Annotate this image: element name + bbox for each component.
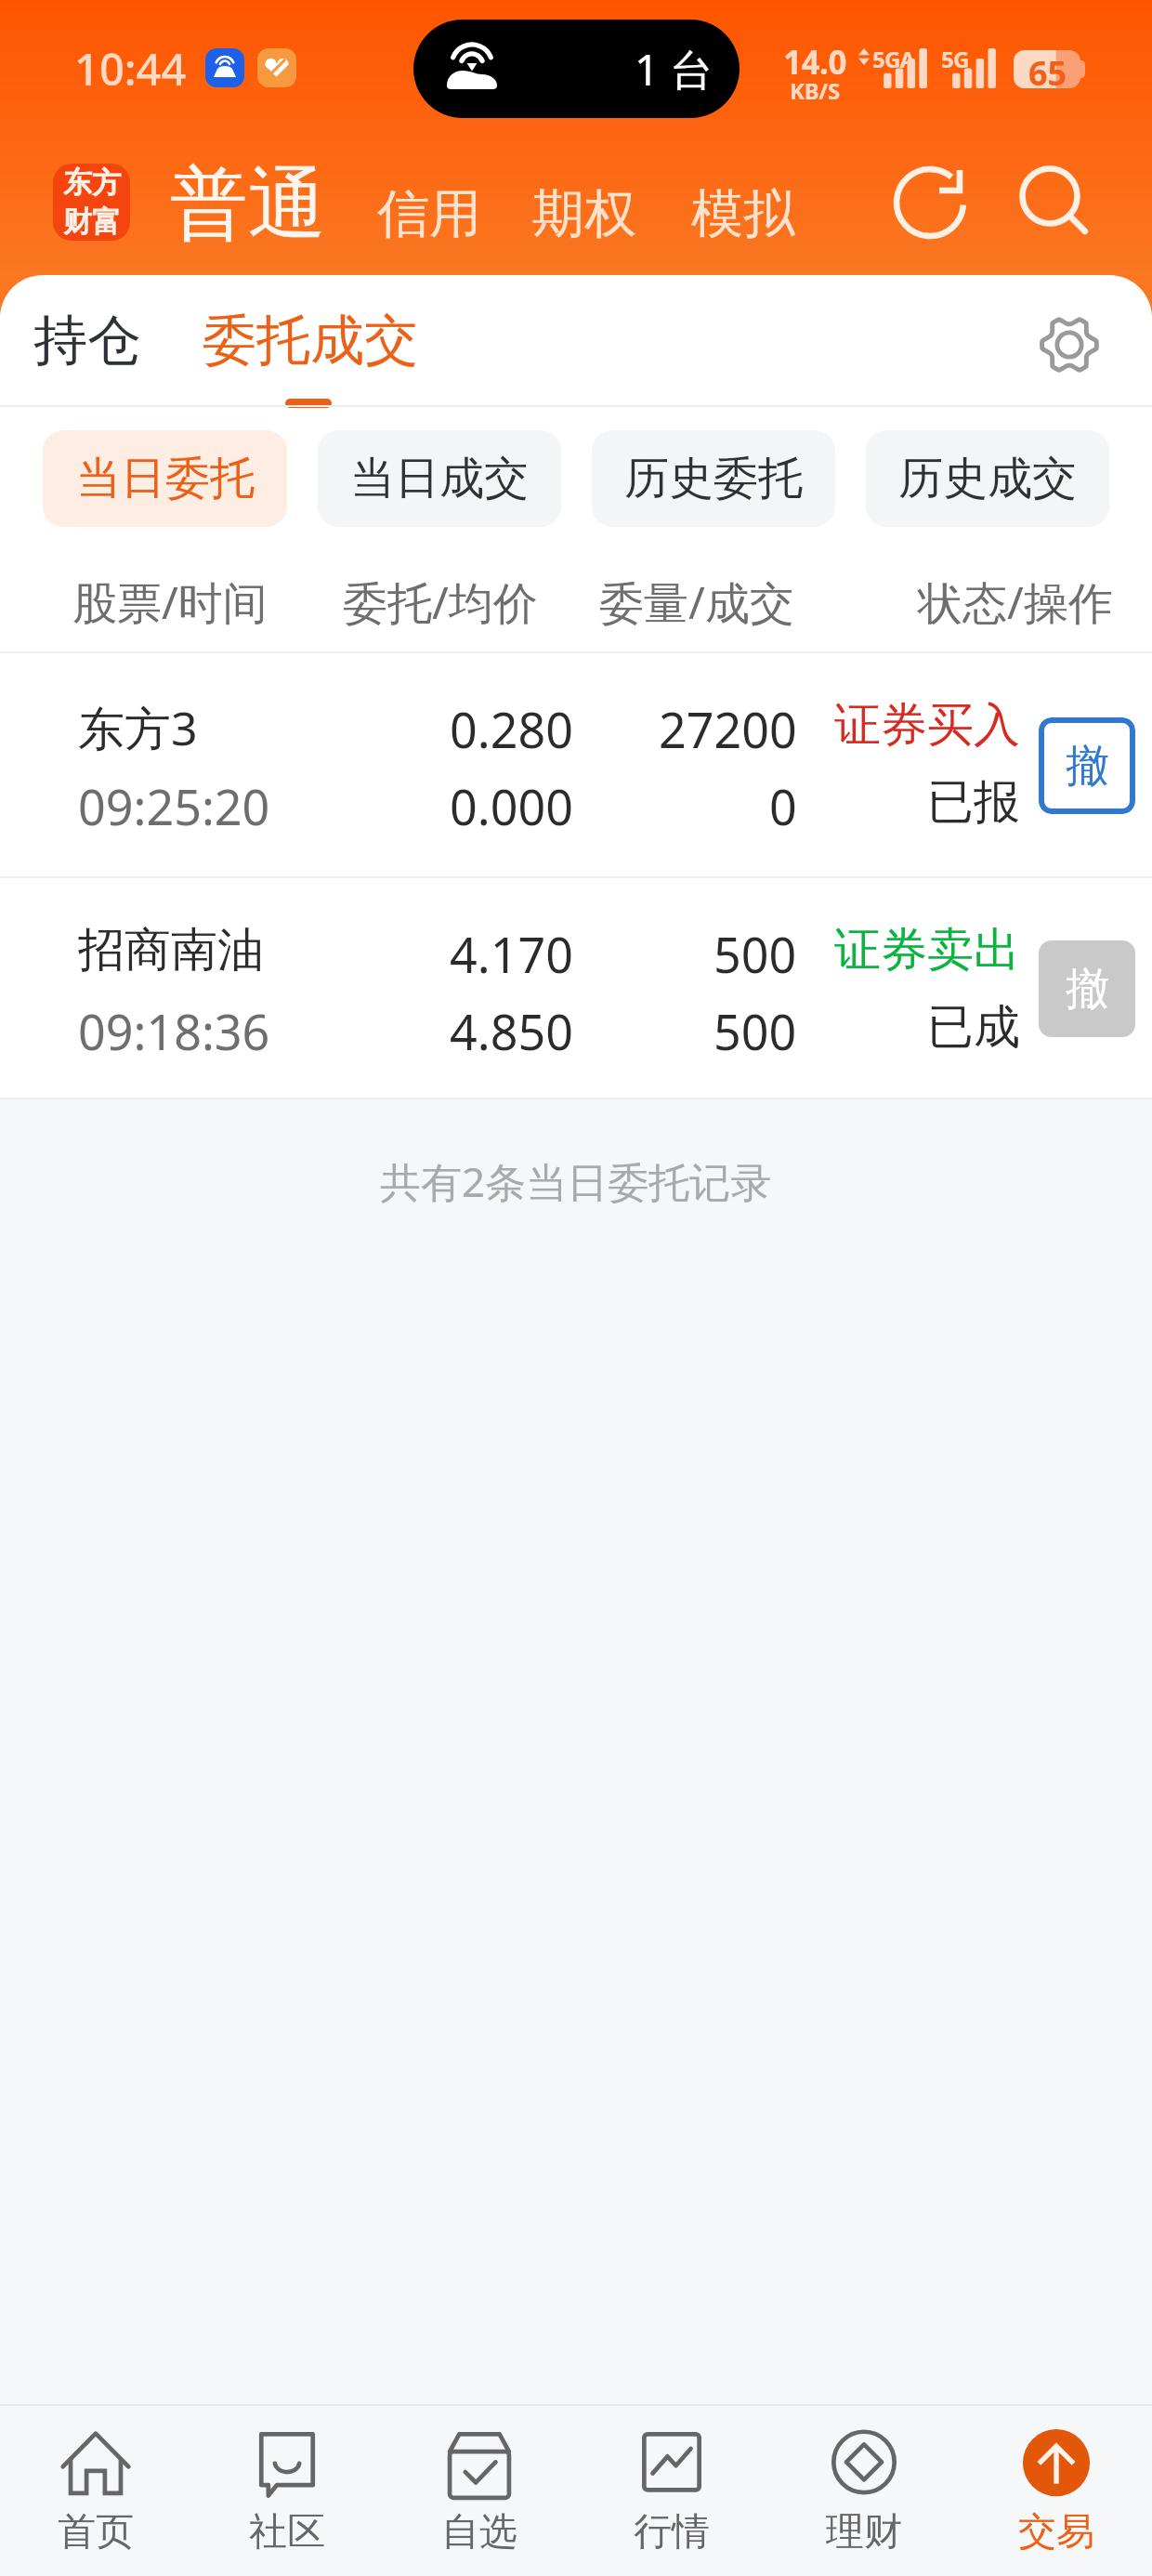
button[interactable]: 东方3 [0,653,1152,878]
button[interactable]: 招商南油 [0,878,1152,1099]
staticText: 财富 [63,204,121,240]
button[interactable]: 撤 [1039,717,1135,814]
staticText: 期权 [532,181,636,247]
staticText: 1 台 [635,40,713,99]
button[interactable]: 当日成交 [318,430,561,527]
button[interactable]: 当日委托 [43,430,287,527]
staticText: 已报 [927,773,1020,832]
staticText: 历史委托 [624,451,803,506]
staticText: 委量/成交 [599,572,794,633]
staticText: 4.170 [450,921,573,987]
staticText: 普通 [170,155,326,254]
button[interactable]: East Money logo [53,164,130,241]
staticText: 09:25:20 [78,773,270,839]
staticText: 首页 [58,2508,134,2556]
button[interactable]: 历史委托 [592,430,835,527]
staticText: 社区 [249,2508,325,2556]
staticText: 0.000 [450,773,573,839]
staticText: 5GA [872,44,915,74]
staticText: 10:44 [74,39,187,99]
staticText: 招商南油 [78,921,264,979]
button[interactable]: 模拟 [691,181,795,247]
button[interactable]: 行情 [575,2406,767,2576]
staticText: 理财 [826,2508,902,2556]
staticText: 历史成交 [898,451,1077,506]
staticText: 5G [941,44,969,74]
staticText: 委托成交 [203,307,418,375]
staticText: 500 [713,998,797,1064]
staticText: 共有2条当日委托记录 [380,1153,772,1209]
staticText: 股票/时间 [72,572,268,633]
button[interactable]: 交易 [960,2406,1152,2576]
button[interactable]: 首页 [0,2406,191,2576]
button[interactable]: Settings [1033,309,1106,381]
staticText: 行情 [634,2508,710,2556]
staticText: 0.280 [450,696,573,762]
staticText: 自选 [441,2508,517,2556]
staticText: 27200 [659,696,797,762]
staticText: 委托/均价 [343,572,538,633]
staticText: 撤 [1066,962,1109,1017]
staticText: 65 [1028,50,1067,88]
staticText: 500 [713,921,797,987]
staticText: 撤 [1066,739,1109,794]
staticText: 持仓 [33,307,141,375]
button[interactable]: 撤 [1039,940,1135,1037]
staticText: 0 [769,773,797,839]
button[interactable]: Search [1011,156,1096,242]
button[interactable]: 委托成交 [203,307,418,408]
staticText: KB/S [790,75,840,106]
button[interactable]: 普通 [170,155,326,254]
staticText: 东方3 [78,696,198,759]
staticText: 09:18:36 [78,998,270,1064]
staticText: 信用 [377,181,481,247]
staticText: 证券买入 [834,696,1020,755]
staticText: 当日成交 [350,451,529,506]
button[interactable]: 理财 [767,2406,960,2576]
staticText: 交易 [1018,2508,1094,2556]
staticText: 东方 [63,164,121,201]
button[interactable]: 历史成交 [866,430,1109,527]
button[interactable]: 自选 [383,2406,575,2576]
button[interactable]: 社区 [191,2406,383,2576]
staticText: 当日委托 [76,451,255,506]
staticText: 4.850 [450,998,573,1064]
staticText: 已成 [927,998,1020,1057]
button[interactable]: 期权 [532,181,636,247]
button[interactable]: 持仓 [33,307,141,375]
staticText: 模拟 [691,181,795,247]
staticText: 状态/操作 [918,572,1113,633]
button[interactable]: 信用 [377,181,481,247]
button[interactable]: Refresh [887,160,973,245]
staticText: 证券卖出 [834,921,1020,979]
staticText: 14.0 [783,40,846,85]
